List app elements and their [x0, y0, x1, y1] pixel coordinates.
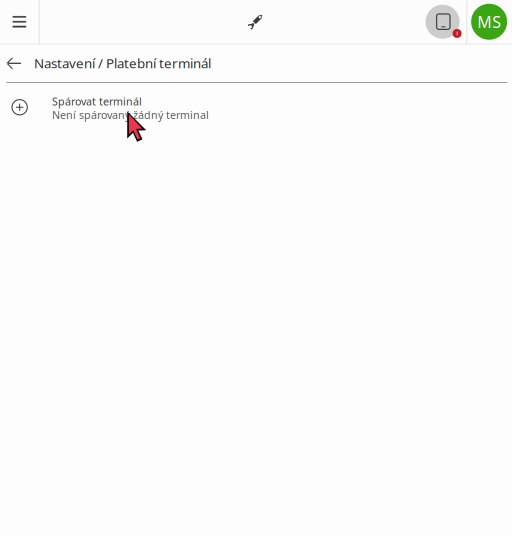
button[interactable]: Menu: [0, 0, 39, 43]
button[interactable]: Spárovat terminál: [0, 87, 512, 131]
button[interactable]: Terminal status: [419, 0, 467, 43]
staticText: Není spárovaný žádný terminal: [52, 108, 209, 122]
button[interactable]: Back: [0, 48, 30, 78]
button[interactable]: Account: [466, 0, 512, 43]
staticText: Nastavení / Platební terminál: [34, 54, 211, 72]
staticText: Spárovat terminál: [52, 94, 142, 109]
staticText: MS: [477, 11, 501, 32]
